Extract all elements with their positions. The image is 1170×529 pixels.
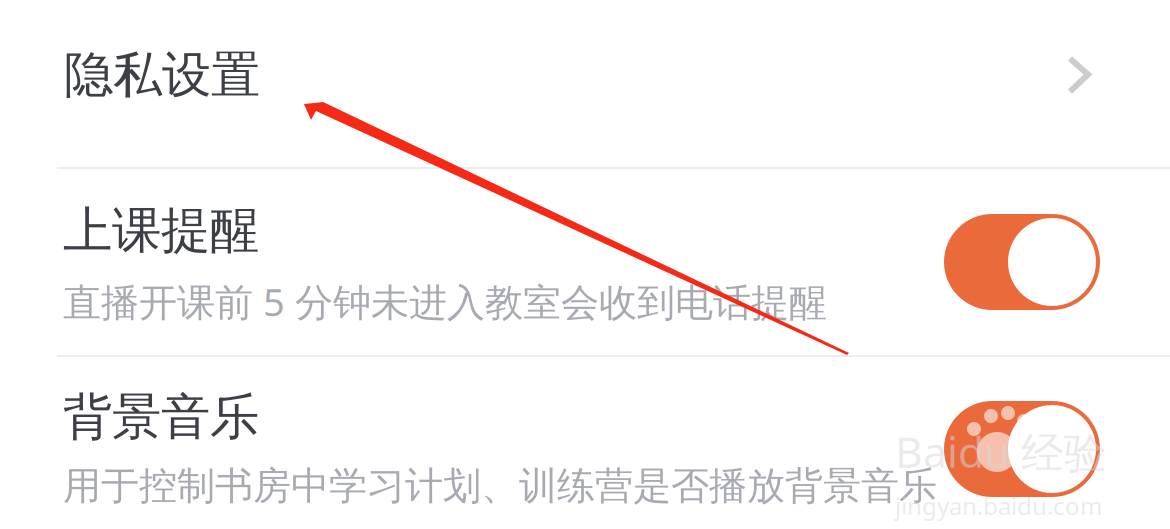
button[interactable]: 背景音乐 (944, 401, 1100, 497)
staticText: 背景音乐 (63, 386, 259, 448)
staticText: 隐私设置 (64, 44, 260, 106)
staticText: jingyan.baidu.com (895, 489, 1102, 522)
staticText: 直播开课前 5 分钟未进入教室会收到电话提醒 (63, 276, 827, 327)
staticText: Baidu 经验 (895, 422, 1107, 480)
button[interactable]: 上课提醒 (944, 214, 1100, 310)
staticText: 上课提醒 (63, 199, 259, 262)
staticText: 用于控制书房中学习计划、训练营是否播放背景音乐 (63, 462, 937, 510)
button[interactable]: 隐私设置 (0, 0, 1170, 167)
